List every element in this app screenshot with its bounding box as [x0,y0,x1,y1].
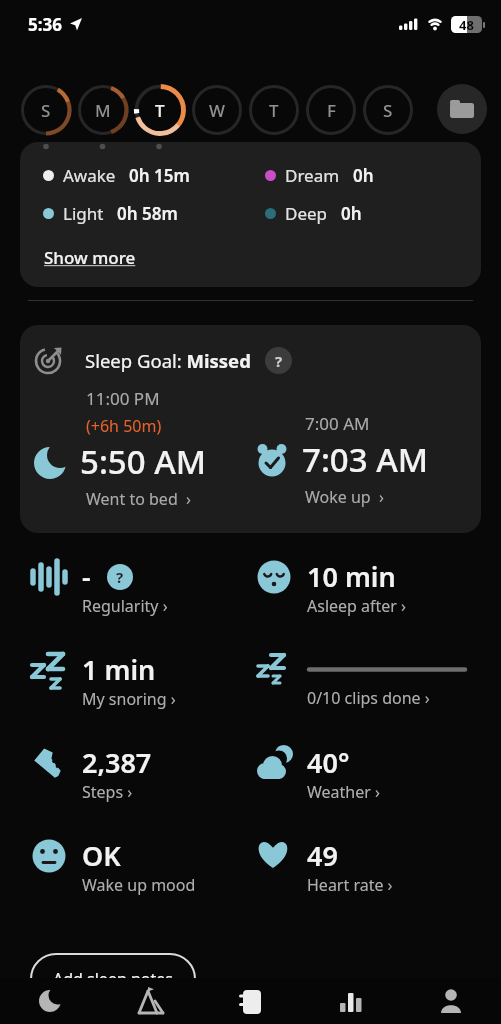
staticText: T [155,99,165,122]
button[interactable]: F [305,84,357,136]
staticText: Went to bed › [86,488,192,510]
button[interactable]: 40° [253,744,380,803]
button[interactable] [201,978,301,1024]
button[interactable] [437,84,487,134]
staticText: S [383,99,393,122]
staticText: ? [116,567,124,587]
staticText: W [209,99,225,122]
staticText: 7:03 AM [302,437,429,482]
staticText: - [82,558,91,595]
staticText: 0h [353,164,374,187]
staticText: 48 [459,16,474,33]
staticText: 5:50 AM [80,439,207,484]
staticText: 7:00 AM [305,412,370,435]
staticText: ? [275,351,283,371]
button[interactable]: T [248,84,300,136]
staticText: Add sleep notes [53,968,173,990]
staticText: Weather › [307,781,380,803]
button[interactable] [101,978,201,1024]
button[interactable]: 49 [253,837,393,896]
staticText: OK [82,837,121,874]
staticText: 2,387 [82,744,152,781]
button[interactable]: 10 min [253,558,407,617]
staticText: 11:00 PM [86,387,160,410]
staticText: Sleep Goal: Missed [85,348,251,373]
button[interactable]: M [77,84,129,136]
button[interactable]: 2,387 [28,744,253,803]
staticText: Awake [63,164,116,187]
button[interactable] [401,978,501,1024]
staticText: T [269,99,279,122]
staticText: 10 min [307,558,396,595]
staticText: Deep [285,202,328,225]
staticText: 1 min [82,651,156,688]
button[interactable]: S [362,84,414,136]
staticText: 0/10 clips done › [307,687,430,709]
staticText: Regularity › [82,595,168,617]
button[interactable]: 0/10 clips done › [253,651,467,709]
button[interactable] [0,978,101,1024]
staticText: 5:36 [28,13,62,36]
staticText: 40° [307,744,350,781]
staticText: (+6h 50m) [86,415,162,437]
staticText: F [327,99,336,122]
staticText: Dream [285,164,340,187]
staticText: 49 [307,837,338,874]
staticText: 0h [341,202,362,225]
button[interactable]: OK [28,837,253,896]
staticText: M [95,99,111,122]
staticText: Light [63,202,104,225]
staticText: My snoring › [82,688,176,710]
button[interactable]: Add sleep notes [30,953,196,1005]
staticText: Woke up › [305,486,384,508]
button[interactable]: T [134,84,186,136]
button[interactable]: S [20,84,72,136]
staticText: Asleep after › [307,595,407,617]
button[interactable]: 1 min [28,651,253,710]
staticText: Steps › [82,781,133,803]
button[interactable]: ? [107,564,133,590]
button[interactable]: Sleep Goal: Missed [20,325,481,533]
staticText: 0h 58m [117,202,178,225]
staticText: 0h 15m [129,164,190,187]
staticText: Heart rate › [307,874,393,896]
button[interactable]: Show more [44,246,136,269]
button[interactable]: ? [265,347,292,374]
button[interactable]: - [28,558,253,617]
button[interactable]: W [191,84,243,136]
staticText: S [41,99,51,122]
button[interactable] [301,978,401,1024]
staticText: Wake up mood [82,874,196,896]
